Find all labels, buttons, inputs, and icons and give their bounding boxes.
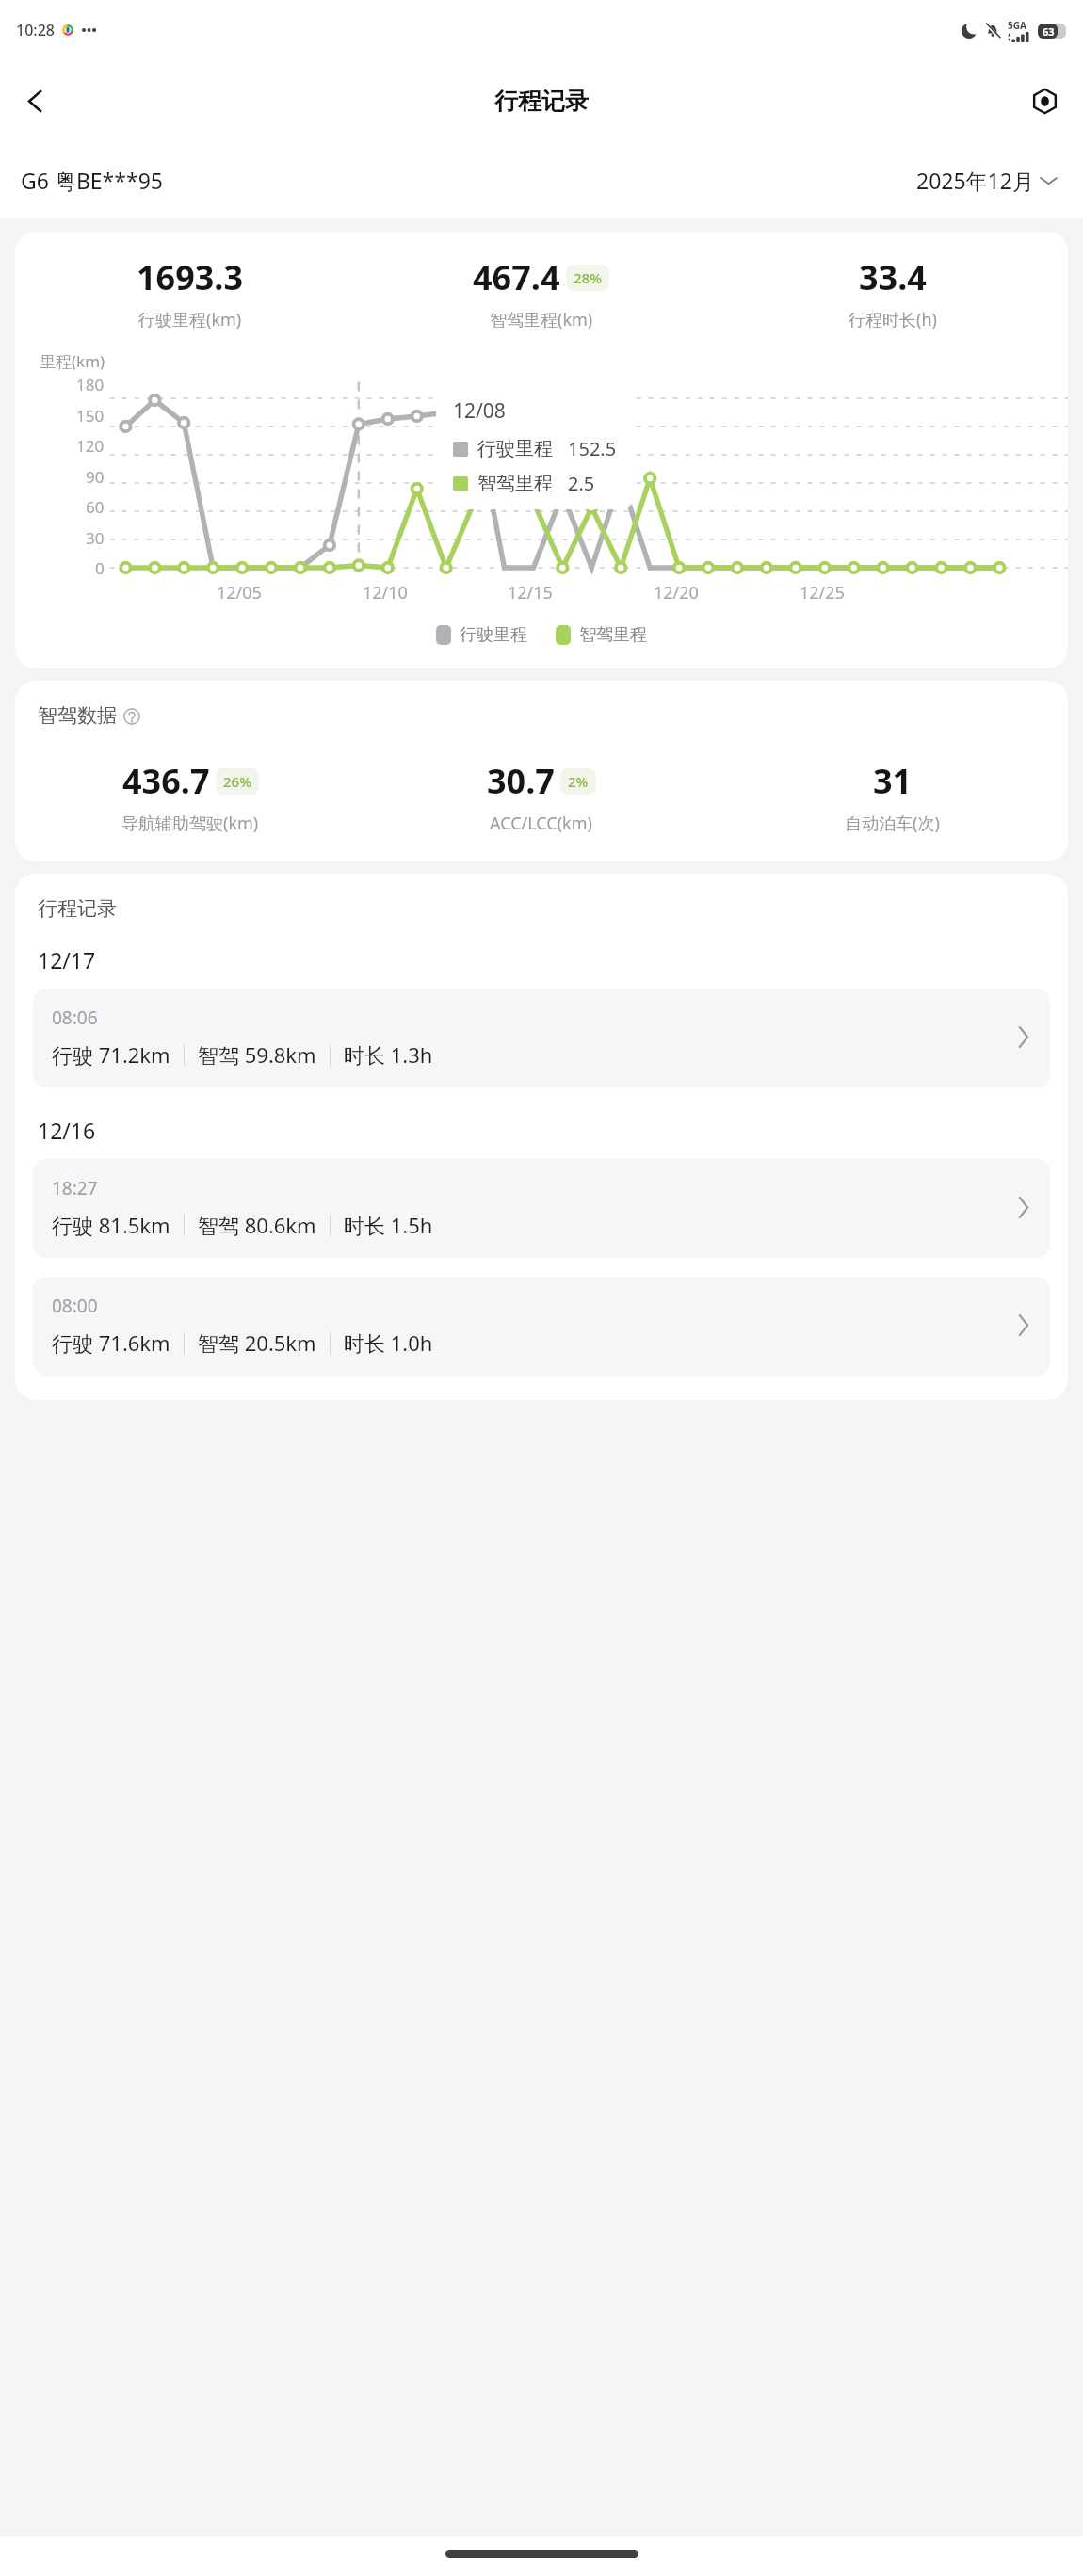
- staticText: 智驾里程: [579, 624, 647, 646]
- staticText: 行驶里程: [460, 624, 527, 646]
- button[interactable]: 18:27: [33, 1159, 1050, 1258]
- staticText: 31: [873, 758, 913, 804]
- button[interactable]: Settings: [1017, 73, 1072, 128]
- staticText: 08:00: [52, 1294, 98, 1318]
- staticText: 行驶里程(km): [138, 308, 242, 331]
- staticText: 12/15: [508, 581, 553, 604]
- button[interactable]: Back: [8, 73, 62, 128]
- staticText: 28%: [574, 268, 602, 287]
- staticText: ACC/LCC(km): [490, 812, 592, 835]
- staticText: 2.5: [568, 471, 595, 496]
- staticText: 467.4: [473, 254, 560, 300]
- staticText: 行驶 71.2km: [52, 1040, 170, 1069]
- button[interactable]: 08:06: [33, 989, 1050, 1087]
- staticText: 0: [95, 557, 105, 579]
- staticText: 120: [76, 435, 105, 457]
- staticText: 5GA: [1008, 19, 1026, 32]
- staticText: 90: [86, 466, 105, 488]
- staticText: 30: [86, 527, 105, 549]
- staticText: 12/17: [38, 945, 96, 974]
- staticText: 智驾 59.8km: [198, 1040, 316, 1069]
- staticText: 智驾数据: [38, 703, 117, 728]
- staticText: 行程记录: [38, 896, 117, 921]
- staticText: 12/25: [800, 581, 845, 604]
- staticText: G6 粤BE***95: [21, 166, 163, 195]
- staticText: 63: [1043, 24, 1055, 39]
- button[interactable]: 08:00: [33, 1277, 1050, 1376]
- staticText: 180: [76, 374, 105, 395]
- staticText: 时长 1.3h: [344, 1040, 433, 1069]
- staticText: 436.7: [122, 758, 210, 804]
- button[interactable]: 2025年12月: [911, 160, 1062, 201]
- staticText: 时长 1.5h: [344, 1211, 433, 1239]
- staticText: 08:06: [52, 1006, 98, 1030]
- staticText: 1693.3: [137, 254, 244, 300]
- staticText: 12/10: [363, 581, 408, 604]
- staticText: 导航辅助驾驶(km): [121, 812, 259, 835]
- staticText: 行程时长(h): [849, 308, 937, 331]
- staticText: 10:28: [16, 20, 55, 40]
- staticText: 智驾 80.6km: [198, 1211, 316, 1239]
- staticText: 里程(km): [40, 350, 105, 372]
- staticText: 30.7: [487, 758, 555, 804]
- staticText: 12/20: [654, 581, 699, 604]
- staticText: 150: [76, 405, 105, 427]
- staticText: 18:27: [52, 1176, 98, 1200]
- staticText: 2025年12月: [916, 166, 1034, 195]
- staticText: 行驶里程: [477, 437, 553, 460]
- staticText: 智驾里程: [477, 472, 553, 495]
- staticText: 33.4: [859, 254, 927, 300]
- staticText: 行驶 71.6km: [52, 1328, 170, 1357]
- staticText: 智驾 20.5km: [198, 1328, 316, 1357]
- staticText: 60: [86, 496, 105, 518]
- staticText: 自动泊车(次): [845, 812, 940, 835]
- staticText: 2%: [568, 772, 589, 791]
- staticText: 12/08: [453, 397, 506, 425]
- staticText: 26%: [223, 772, 251, 791]
- staticText: 智驾里程(km): [490, 308, 593, 331]
- button[interactable]: Help: [121, 706, 141, 726]
- staticText: 时长 1.0h: [344, 1328, 433, 1357]
- staticText: 行驶 81.5km: [52, 1211, 170, 1239]
- staticText: 12/05: [217, 581, 262, 604]
- staticText: 152.5: [568, 436, 617, 461]
- staticText: 12/16: [38, 1116, 96, 1145]
- staticText: 行程记录: [494, 87, 589, 116]
